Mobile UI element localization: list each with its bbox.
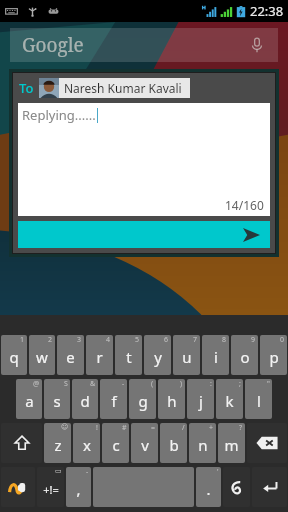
button[interactable]: ! — [73, 423, 100, 463]
staticText: Naresh Kumar Kavali — [64, 80, 182, 96]
staticText: ☺ — [61, 423, 69, 431]
staticText: , — [76, 479, 81, 499]
staticText: 6 — [164, 335, 169, 345]
staticText: i — [214, 347, 218, 367]
button[interactable]: + — [189, 423, 216, 463]
staticText: g — [138, 391, 148, 411]
button[interactable]: ( — [129, 379, 156, 419]
staticText: ' — [217, 467, 219, 477]
staticText: ; — [239, 379, 241, 389]
staticText: 2 — [48, 335, 53, 345]
button[interactable]: 0 — [260, 335, 287, 375]
button[interactable]: Naresh Kumar Kavali — [39, 78, 190, 98]
staticText: +!= — [43, 482, 59, 497]
button[interactable]: ☺ — [44, 423, 71, 463]
staticText: n — [198, 435, 208, 455]
staticText: w — [36, 347, 48, 367]
staticText: p — [269, 347, 279, 367]
button[interactable]: Swype — [223, 467, 250, 507]
staticText: 7 — [193, 335, 198, 345]
staticText: 3 — [77, 335, 82, 345]
staticText: " — [267, 379, 270, 389]
button[interactable]: Enter — [252, 467, 287, 507]
button[interactable]: & — [72, 379, 98, 419]
button[interactable]: 3 — [57, 335, 84, 375]
staticText: 0 — [280, 335, 285, 345]
button[interactable]: @ — [16, 379, 42, 419]
staticText: & — [90, 379, 96, 389]
button[interactable]: - — [66, 467, 91, 507]
button[interactable]: ' — [196, 467, 221, 507]
staticText: 9 — [251, 335, 256, 345]
staticText: ? — [239, 423, 243, 433]
staticText: l — [257, 391, 261, 411]
button[interactable]: 9 — [231, 335, 258, 375]
button[interactable]: ? — [218, 423, 245, 463]
button[interactable]: 1 — [1, 335, 27, 375]
staticText: Replying...... — [22, 106, 96, 124]
button[interactable]: Voice search — [246, 34, 268, 56]
staticText: - — [86, 467, 89, 477]
button[interactable]: # — [102, 423, 129, 463]
staticText: f — [111, 391, 117, 411]
staticText: ! — [96, 423, 98, 433]
staticText: 5 — [135, 335, 140, 345]
button[interactable]: 4 — [86, 335, 113, 375]
staticText: ( — [151, 379, 154, 389]
button[interactable]: 8 — [202, 335, 229, 375]
staticText: k — [225, 391, 234, 411]
button[interactable]: " — [245, 379, 272, 419]
button[interactable]: Send — [18, 221, 270, 248]
staticText: x — [83, 435, 91, 455]
button[interactable]: - — [100, 379, 127, 419]
staticText: ▭ — [55, 467, 62, 475]
button[interactable]: : — [187, 379, 214, 419]
staticText: 1 — [20, 335, 25, 345]
button[interactable]: Input method — [1, 467, 35, 507]
staticText: ) — [180, 379, 183, 389]
button[interactable]: Google — [10, 28, 278, 62]
button[interactable]: 2 — [29, 335, 55, 375]
staticText: # — [122, 423, 127, 433]
staticText: / — [182, 423, 185, 433]
button[interactable]: ) — [158, 379, 185, 419]
staticText: s — [53, 391, 61, 411]
staticText: To — [19, 79, 34, 97]
button[interactable]: Replying...... — [18, 103, 270, 216]
staticText: 8 — [222, 335, 227, 345]
button[interactable]: = — [131, 423, 158, 463]
staticText: . — [206, 479, 211, 499]
staticText: q — [9, 347, 19, 367]
button[interactable]: Shift — [1, 423, 42, 463]
button[interactable]: Delete — [247, 423, 287, 463]
staticText: j — [199, 391, 203, 411]
staticText: z — [54, 435, 62, 455]
staticText: r — [96, 347, 103, 367]
staticText: o — [240, 347, 250, 367]
staticText: d — [80, 391, 90, 411]
staticText: + — [209, 423, 214, 433]
staticText: y — [154, 347, 162, 367]
button[interactable]: S — [44, 379, 70, 419]
button[interactable]: / — [160, 423, 187, 463]
staticText: u — [182, 347, 192, 367]
staticText: h — [167, 391, 177, 411]
staticText: m — [224, 435, 239, 455]
staticText: 22:38 — [250, 2, 284, 20]
button[interactable]: 7 — [173, 335, 200, 375]
staticText: b — [169, 435, 179, 455]
staticText: 4 — [106, 335, 111, 345]
staticText: 14/160 — [225, 197, 264, 213]
button[interactable]: ; — [216, 379, 243, 419]
staticText: c — [112, 435, 120, 455]
staticText: v — [141, 435, 149, 455]
staticText: Google — [22, 32, 84, 58]
staticText: : — [210, 379, 212, 389]
button[interactable]: 6 — [144, 335, 171, 375]
staticText: - — [122, 379, 125, 389]
button[interactable]: ▭ — [37, 467, 64, 507]
staticText: S — [64, 379, 68, 389]
staticText: e — [66, 347, 75, 367]
button[interactable]: 5 — [115, 335, 142, 375]
